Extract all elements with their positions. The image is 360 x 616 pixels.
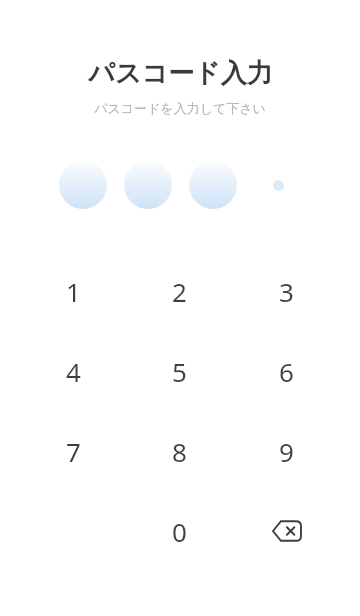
button[interactable]: 5 [126, 331, 233, 411]
staticText: 8 [172, 434, 187, 469]
button[interactable]: 0 [126, 491, 233, 571]
staticText: 0 [172, 514, 187, 549]
button[interactable]: 1 [20, 251, 126, 331]
button[interactable]: 4 [20, 331, 126, 411]
button[interactable]: 3 [233, 251, 340, 331]
button[interactable]: 7 [20, 411, 126, 491]
staticText: 3 [279, 274, 294, 309]
staticText: 4 [66, 354, 81, 389]
button[interactable]: 9 [233, 411, 340, 491]
button[interactable]: 2 [126, 251, 233, 331]
button[interactable]: Backspace [233, 491, 340, 571]
button[interactable]: 6 [233, 331, 340, 411]
staticText: パスコード入力 [88, 57, 273, 90]
staticText: 9 [279, 434, 294, 469]
staticText: 5 [172, 354, 187, 389]
staticText: 7 [66, 434, 81, 469]
staticText: 6 [279, 354, 294, 389]
staticText: 1 [66, 274, 81, 309]
button[interactable]: 8 [126, 411, 233, 491]
staticText: パスコードを入力して下さい [94, 100, 266, 116]
staticText: 2 [172, 274, 187, 309]
